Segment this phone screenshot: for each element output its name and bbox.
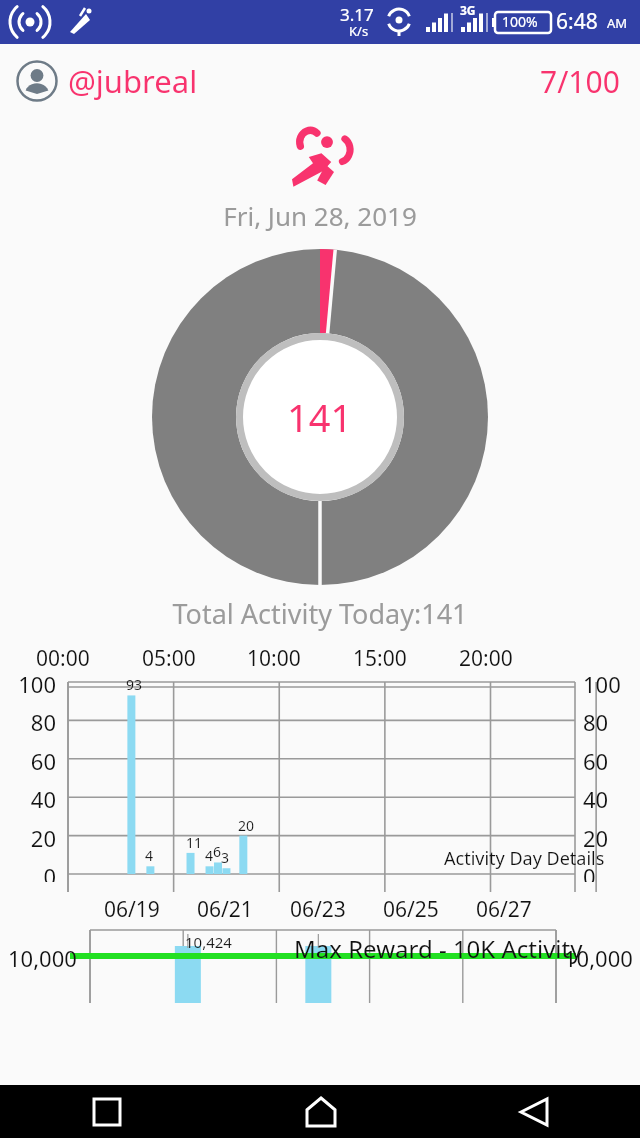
staticText: 0 [0,861,56,882]
staticText: 06/25 [383,895,439,924]
staticText: 100 [0,669,56,699]
staticText: 06/27 [476,895,532,924]
button[interactable]: Max Reward - 10K Activity [294,932,583,965]
staticText: 3 [221,848,230,867]
staticText: 06/23 [290,895,346,924]
staticText: AM [607,14,628,32]
staticText: 4 [145,846,154,865]
staticText: 40 [583,784,609,814]
staticText: 10,424 [185,932,232,952]
staticText: 05:00 [142,644,196,673]
staticText: 20 [238,816,255,835]
staticText: 3G [460,2,476,18]
staticText: Fri, Jun 28, 2019 [0,198,640,233]
staticText: 60 [0,746,56,776]
staticText: 20 [0,823,56,853]
staticText: 60 [583,746,609,776]
button[interactable]: Activity Day Details [444,846,605,871]
staticText: 00:00 [36,644,90,673]
staticText: 06/21 [197,895,253,924]
button[interactable]: Back [427,1085,640,1138]
staticText: 20 [583,823,609,853]
staticText: 6:48 [556,7,598,36]
button[interactable]: @jubreal [16,60,198,102]
staticText: 40 [0,784,56,814]
staticText: 20:00 [459,644,513,673]
staticText: 10,000 [564,943,633,973]
staticText: 4 [205,846,214,865]
staticText: 10,000 [8,943,77,973]
staticText: 6 [213,842,222,861]
staticText: 80 [583,707,609,737]
staticText: 06/19 [104,895,160,924]
staticText: 93 [126,675,143,694]
button[interactable]: 7/100 [540,61,620,102]
staticText: 0 [583,861,596,882]
staticText: K/s [349,22,369,40]
staticText: 15:00 [353,644,407,673]
staticText: 100 [583,669,621,699]
staticText: Total Activity Today:141 [0,595,640,632]
staticText: 3.17 [340,3,374,26]
staticText: 141 [287,391,353,443]
button[interactable]: Recents [0,1085,214,1138]
staticText: 11 [186,833,203,852]
staticText: 10:00 [247,644,301,673]
staticText: 80 [0,707,56,737]
staticText: @jubreal [68,60,198,102]
button[interactable]: Home [214,1085,427,1138]
staticText: 100% [502,12,538,31]
